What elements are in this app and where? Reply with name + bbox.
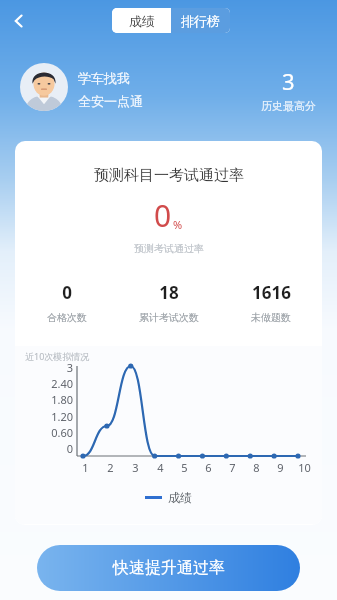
staticText: 1 — [82, 460, 89, 475]
button[interactable]: 成绩 — [112, 8, 171, 33]
staticText: 6 — [205, 460, 212, 475]
staticText: 8 — [253, 460, 260, 475]
staticText: 7 — [229, 460, 236, 475]
staticText: 1.20 — [39, 409, 73, 424]
staticText: 成绩 — [129, 13, 155, 29]
staticText: 预测考试通过率 — [134, 242, 204, 255]
button[interactable]: Avatar — [20, 63, 68, 111]
staticText: 0 — [39, 441, 73, 456]
staticText: 1616 — [252, 281, 291, 304]
staticText: 3 — [39, 360, 73, 375]
staticText: 合格次数 — [47, 311, 87, 324]
staticText: 成绩 — [168, 490, 192, 505]
staticText: 快速提升通过率 — [113, 558, 225, 578]
staticText: 1.80 — [39, 392, 73, 407]
button[interactable]: 0 — [15, 281, 118, 324]
staticText: 累计考试次数 — [139, 311, 199, 324]
staticText: 5 — [181, 460, 188, 475]
staticText: 2 — [107, 460, 114, 475]
staticText: 9 — [277, 460, 284, 475]
staticText: 0.60 — [39, 425, 73, 440]
staticText: 近10次模拟情况 — [25, 350, 90, 362]
button[interactable]: 快速提升通过率 — [37, 545, 300, 591]
staticText: 0 — [62, 281, 72, 304]
staticText: 排行榜 — [181, 13, 220, 29]
staticText: 4 — [157, 460, 164, 475]
staticText: % — [173, 217, 183, 232]
staticText: 学车找我 — [78, 70, 130, 86]
staticText: 未做题数 — [251, 311, 291, 324]
staticText: 3 — [132, 460, 139, 475]
button[interactable]: 排行榜 — [171, 8, 230, 33]
staticText: 0 — [154, 195, 172, 236]
staticText: 全安一点通 — [78, 93, 143, 109]
button[interactable]: 1616 — [220, 281, 322, 324]
staticText: 预测科目一考试通过率 — [94, 166, 244, 185]
staticText: 2.40 — [39, 376, 73, 391]
staticText: 3 — [282, 66, 295, 96]
staticText: 历史最高分 — [261, 99, 316, 113]
button[interactable]: 18 — [118, 281, 220, 324]
staticText: 18 — [159, 281, 179, 304]
staticText: 10 — [298, 460, 311, 475]
button[interactable]: Back — [4, 6, 34, 36]
